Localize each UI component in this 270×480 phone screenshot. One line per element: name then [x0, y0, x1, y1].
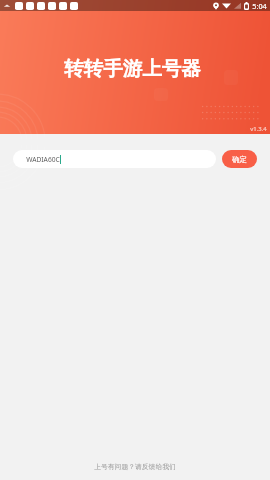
button[interactable]: 确定	[222, 150, 257, 168]
staticText: 确定	[232, 155, 247, 164]
staticText: 5:04	[252, 1, 267, 11]
staticText: v1.3.4	[250, 125, 267, 133]
button[interactable]: 输入激活码	[13, 150, 216, 168]
staticText: 转转手游上号器	[64, 56, 201, 81]
staticText: WADIA60C	[26, 155, 60, 164]
button[interactable]: 上号有问题？请反馈给我们	[82, 453, 188, 480]
